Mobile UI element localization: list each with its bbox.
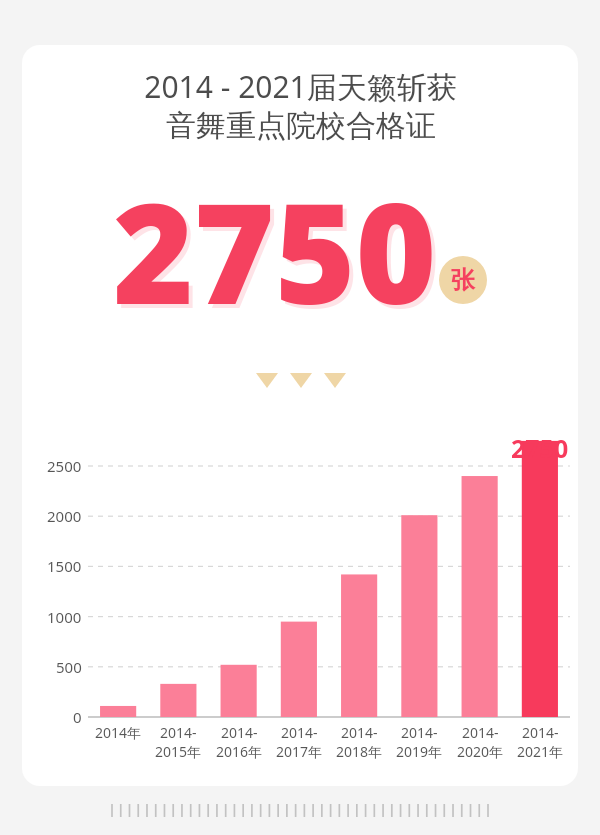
staticText: 2014- — [281, 723, 318, 742]
staticText: 2014年 — [95, 723, 142, 742]
button[interactable]: 2014- — [389, 723, 449, 761]
staticText: 音舞重点院校合格证 — [166, 107, 436, 145]
button[interactable]: 2014- — [209, 723, 269, 761]
staticText: 2014 - 2021届天籁斩获 — [144, 66, 457, 107]
staticText: 2014- — [221, 723, 258, 742]
button[interactable]: 2014- — [329, 723, 389, 761]
staticText: 2014- — [522, 723, 559, 742]
staticText: 2015年 — [155, 742, 202, 761]
button[interactable]: 2014年 — [88, 723, 148, 742]
staticText: 2750 — [117, 160, 441, 324]
other: Decorative arrows — [256, 373, 346, 389]
staticText: 2000 — [47, 506, 82, 526]
staticText: 2017年 — [276, 742, 323, 761]
staticText: 1000 — [47, 607, 82, 627]
button[interactable]: 2014- — [510, 723, 570, 761]
staticText: 2019年 — [396, 742, 443, 761]
staticText: 2014- — [160, 723, 197, 742]
staticText: 0 — [73, 707, 82, 727]
staticText: 2014- — [462, 723, 499, 742]
staticText: 1500 — [47, 556, 82, 576]
staticText: 2018年 — [336, 742, 383, 761]
staticText: 2014- — [341, 723, 378, 742]
staticText: 2021年 — [517, 742, 564, 761]
staticText: 2750 — [511, 431, 569, 465]
staticText: 张 — [451, 265, 475, 295]
staticText: 2500 — [47, 456, 82, 476]
staticText: 2014- — [401, 723, 438, 742]
button[interactable] — [22, 45, 578, 786]
staticText: 2020年 — [457, 742, 504, 761]
button[interactable]: 2014- — [269, 723, 329, 761]
button[interactable]: 2014- — [450, 723, 510, 761]
button[interactable]: 2014- — [148, 723, 208, 761]
staticText: 500 — [56, 657, 82, 677]
staticText: 2750 — [113, 156, 437, 320]
staticText: 2016年 — [216, 742, 263, 761]
